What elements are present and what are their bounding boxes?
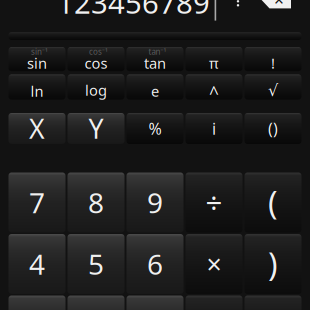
staticText: e [151, 81, 159, 101]
button[interactable]: 5 [67, 234, 124, 294]
staticText: 4 [29, 245, 45, 283]
button[interactable]: e [126, 74, 183, 100]
button[interactable]: X [8, 113, 65, 144]
staticText: ÷ [205, 183, 222, 222]
button[interactable]: i [185, 113, 242, 144]
button[interactable]: ln [8, 74, 65, 100]
staticText: 123456789 [57, 0, 210, 22]
staticText: tan⁻¹ [148, 46, 166, 57]
staticText: log [85, 80, 107, 100]
staticText: cos⁻¹ [89, 46, 108, 57]
button[interactable]: ( [244, 172, 301, 232]
button[interactable]: log [67, 74, 124, 100]
button[interactable]: − [185, 295, 242, 310]
button[interactable]: 3 [126, 295, 183, 310]
button[interactable]: % [126, 113, 183, 144]
staticText: × [274, 0, 284, 11]
button[interactable]: 9 [126, 172, 183, 232]
button[interactable]: 4 [8, 234, 65, 294]
staticText: Y [88, 111, 103, 146]
button[interactable]: () [244, 113, 301, 144]
staticText: ( [268, 181, 278, 224]
staticText: 7 [29, 184, 45, 221]
button[interactable]: 6 [126, 234, 183, 294]
staticText: cos [84, 53, 107, 73]
button[interactable]: Y [67, 113, 124, 144]
staticText: × [206, 246, 221, 282]
staticText: π [209, 53, 219, 73]
staticText: 6 [147, 245, 163, 283]
staticText: ln [30, 81, 43, 101]
button[interactable]: √ [244, 74, 301, 100]
staticText: % [148, 118, 161, 139]
staticText: tan [144, 53, 166, 73]
button[interactable]: π [185, 47, 242, 71]
button[interactable]: Delete [260, 0, 292, 8]
staticText: 5 [88, 245, 104, 283]
staticText: ^ [209, 81, 219, 104]
staticText: sin [27, 53, 47, 73]
button[interactable]: More options [227, 0, 249, 6]
button[interactable]: sin⁻¹ [8, 47, 65, 71]
button[interactable]: 7 [8, 172, 65, 232]
button[interactable]: 2 [67, 295, 124, 310]
button[interactable]: tan⁻¹ [126, 47, 183, 71]
staticText: sin⁻¹ [31, 46, 48, 57]
button[interactable]: ! [244, 47, 301, 71]
button[interactable]: ) [244, 234, 301, 294]
staticText: ! [271, 53, 275, 73]
staticText: √ [268, 81, 278, 100]
button[interactable]: ^ [185, 74, 242, 100]
button[interactable]: 8 [67, 172, 124, 232]
button[interactable]: ÷ [185, 172, 242, 232]
staticText: ) [268, 243, 278, 285]
staticText: i [212, 118, 216, 139]
staticText: () [268, 118, 278, 139]
button[interactable]: 1 [8, 295, 65, 310]
staticText: 8 [88, 184, 104, 221]
button[interactable]: cos⁻¹ [67, 47, 124, 71]
button[interactable]: = [244, 295, 301, 310]
staticText: X [29, 111, 45, 146]
button[interactable]: × [185, 234, 242, 294]
staticText: 9 [147, 184, 163, 221]
